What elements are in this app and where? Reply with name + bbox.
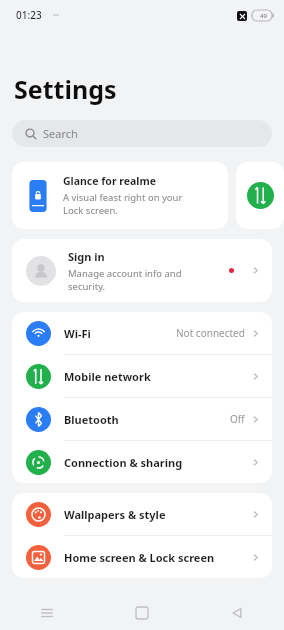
staticText: Connection & sharing: [64, 455, 250, 470]
staticText: Home screen & Lock screen: [64, 550, 250, 565]
other: Open: [250, 414, 261, 425]
staticText: Off: [230, 412, 245, 426]
staticText: A visual feast right on your Lock screen…: [63, 191, 183, 217]
other: Open: [250, 371, 261, 382]
button[interactable]: Recent apps: [0, 596, 94, 630]
button[interactable]: Wi-Fi: [12, 312, 272, 354]
staticText: Bluetooth: [64, 412, 230, 427]
staticText: Not connected: [176, 326, 245, 340]
other: Open: [250, 265, 261, 276]
button[interactable]: Wallpapers & style: [12, 493, 272, 535]
other: Open: [250, 328, 261, 339]
button[interactable]: Connection & sharing: [12, 441, 272, 483]
staticText: Wallpapers & style: [64, 507, 250, 522]
staticText: Wi-Fi: [64, 326, 176, 341]
button[interactable]: Bluetooth: [12, 398, 272, 440]
staticText: Sign in: [68, 249, 105, 264]
staticText: 01:23: [16, 8, 42, 22]
staticText: Search: [43, 126, 78, 141]
other: Open: [250, 457, 261, 468]
button[interactable]: Home: [94, 596, 189, 630]
staticText: Glance for realme: [63, 174, 156, 188]
staticText: 49: [260, 12, 267, 20]
button[interactable]: Glance for realme: [12, 162, 228, 229]
button[interactable]: Search: [12, 120, 272, 147]
button[interactable]: Back: [189, 596, 284, 630]
staticText: Settings: [14, 72, 117, 106]
button[interactable]: [236, 162, 284, 229]
button[interactable]: Home screen & Lock screen: [12, 536, 272, 578]
button[interactable]: Mobile network: [12, 355, 272, 397]
other: Open: [250, 552, 261, 563]
staticText: Mobile network: [64, 369, 250, 384]
staticText: Manage account info and security.: [68, 267, 182, 293]
button[interactable]: Sign in: [12, 239, 272, 302]
other: Open: [250, 509, 261, 520]
